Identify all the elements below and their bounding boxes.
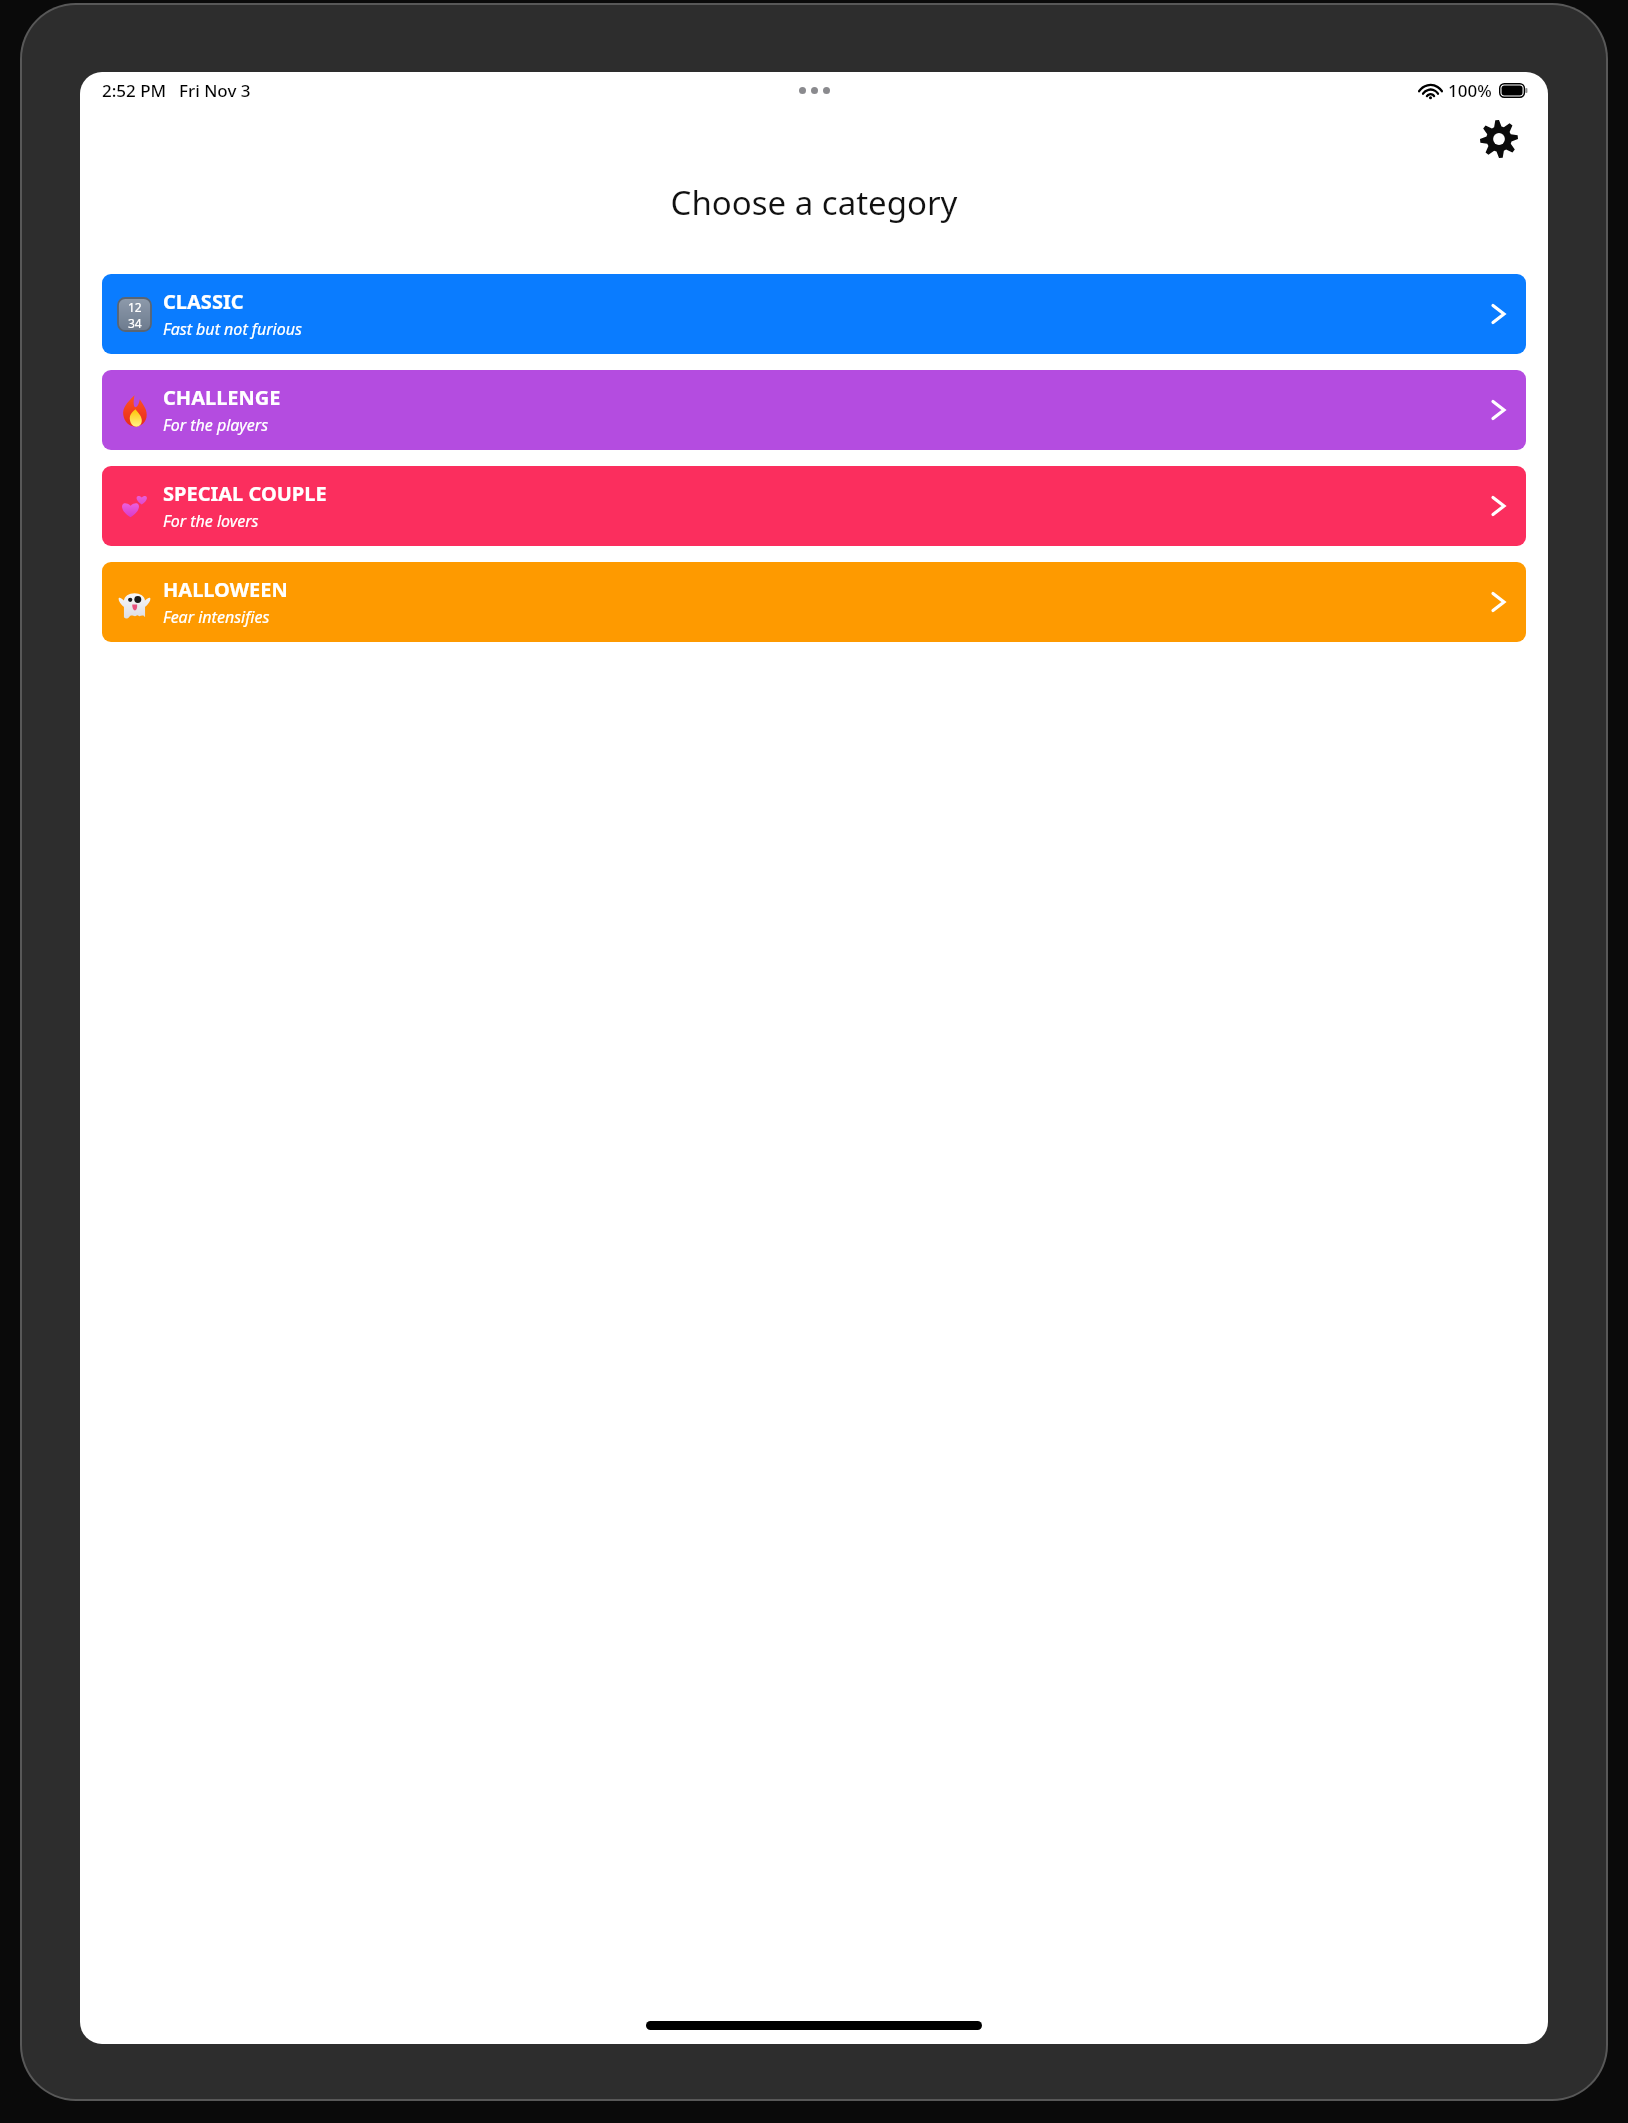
button[interactable]: Settings	[1472, 112, 1526, 166]
staticText: 100%	[1448, 79, 1492, 102]
staticText: CHALLENGE	[163, 384, 281, 411]
button[interactable]: CHALLENGE	[102, 370, 1526, 450]
staticText: HALLOWEEN	[163, 576, 288, 603]
staticText: Fri Nov 3	[179, 79, 251, 102]
staticText: 34	[128, 315, 142, 331]
staticText: Choose a category	[80, 180, 1548, 225]
staticText: SPECIAL COUPLE	[163, 480, 327, 507]
button[interactable]: 12	[102, 274, 1526, 354]
staticText: 2:52 PM	[102, 79, 167, 102]
button[interactable]: HALLOWEEN	[102, 562, 1526, 642]
staticText: Fast but not furious	[163, 318, 302, 340]
button[interactable]: SPECIAL COUPLE	[102, 466, 1526, 546]
staticText: For the lovers	[163, 510, 259, 532]
staticText: 12	[128, 299, 142, 315]
staticText: CLASSIC	[163, 288, 244, 315]
staticText: Fear intensifies	[163, 606, 270, 628]
staticText: For the players	[163, 414, 269, 436]
